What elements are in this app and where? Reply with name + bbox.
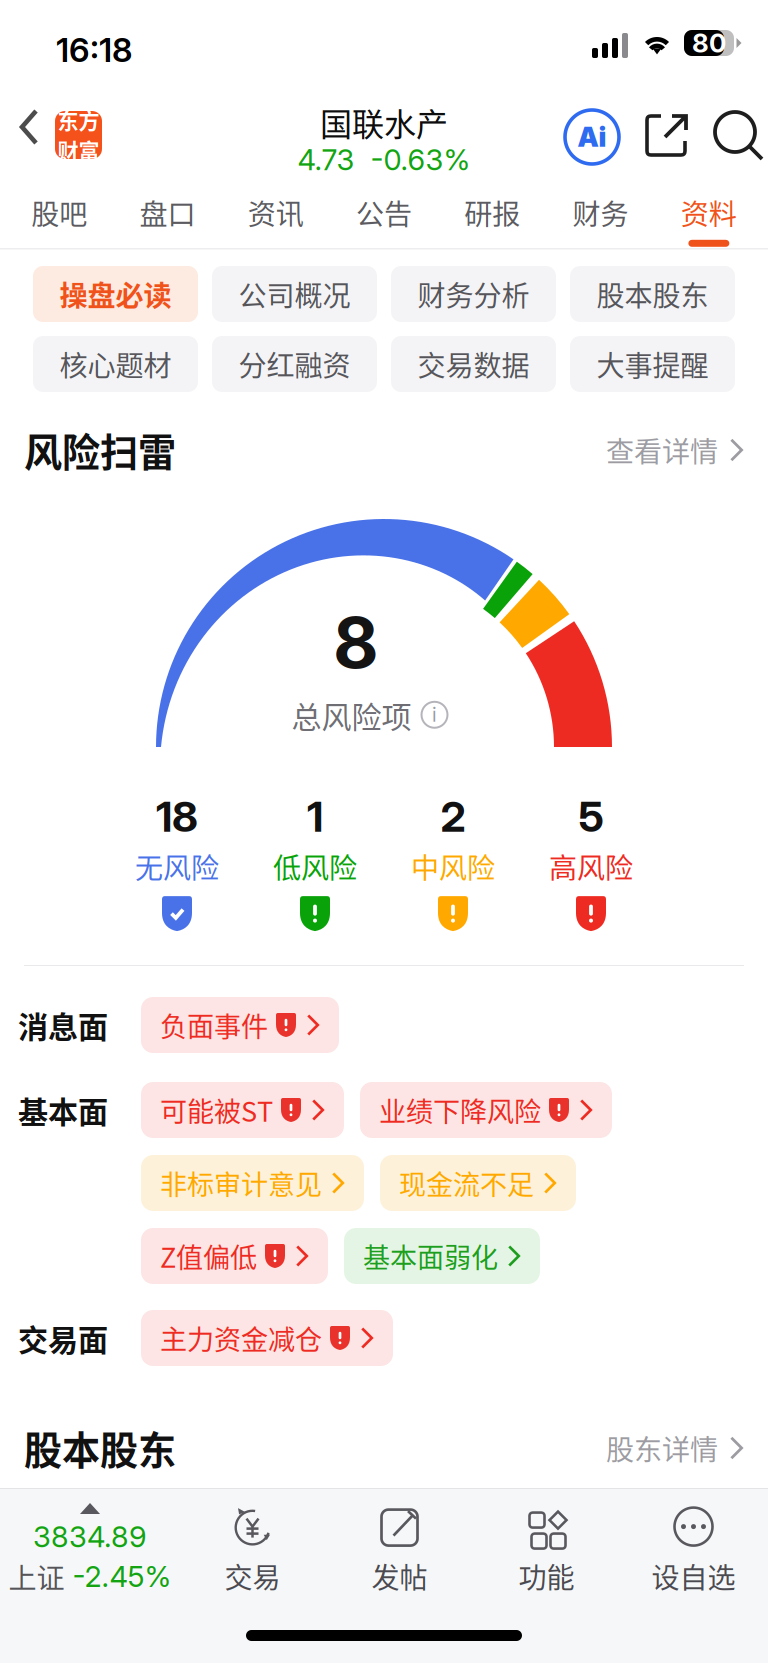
staticText: 主力资金减仓: [160, 1318, 322, 1358]
button[interactable]: 发帖: [326, 1504, 473, 1596]
staticText: 交易数据: [417, 344, 529, 384]
button[interactable]: 3834.89: [1, 1503, 179, 1597]
staticText: 3834.89: [33, 1519, 147, 1554]
staticText: 国联水产: [320, 99, 448, 145]
staticText: 现金流不足: [399, 1163, 534, 1203]
staticText: 4.73 -0.63%: [297, 142, 470, 177]
button[interactable]: 业绩下降风险: [360, 1082, 612, 1138]
staticText: 高风险: [549, 846, 633, 887]
staticText: 负面事件: [160, 1005, 268, 1045]
staticText: 东方: [57, 104, 99, 135]
staticText: 资讯: [248, 192, 304, 233]
button[interactable]: 研报: [438, 180, 546, 247]
staticText: 消息面: [18, 1003, 108, 1047]
button[interactable]: 公告: [330, 180, 438, 247]
button[interactable]: 现金流不足: [380, 1155, 576, 1211]
button[interactable]: 公司概况: [212, 266, 377, 322]
staticText: Z值偏低: [160, 1236, 257, 1276]
staticText: 发帖: [371, 1556, 427, 1596]
staticText: 5: [578, 791, 603, 842]
button[interactable]: 功能: [473, 1504, 620, 1596]
staticText: 公司概况: [238, 274, 350, 314]
staticText: 非标审计意见: [160, 1163, 322, 1203]
button[interactable]: 交易: [179, 1504, 326, 1596]
staticText: 股吧: [31, 192, 87, 233]
staticText: 交易: [224, 1556, 280, 1596]
staticText: 设自选: [651, 1556, 735, 1596]
staticText: Ai: [577, 121, 606, 153]
staticText: 查看详情: [606, 430, 718, 470]
button[interactable]: 负面事件: [141, 997, 339, 1053]
staticText: 资料: [681, 192, 737, 233]
staticText: 业绩下降风险: [379, 1090, 541, 1130]
staticText: 可能被ST: [160, 1090, 273, 1130]
button[interactable]: Back: [14, 105, 44, 151]
staticText: 基本面弱化: [363, 1236, 498, 1276]
staticText: 股东详情: [606, 1428, 718, 1468]
staticText: 2: [440, 791, 465, 842]
staticText: 80: [692, 27, 726, 59]
staticText: 交易面: [18, 1316, 108, 1360]
button[interactable]: 资讯: [222, 180, 330, 247]
button[interactable]: 可能被ST: [141, 1082, 344, 1138]
button[interactable]: Search: [714, 110, 766, 162]
button[interactable]: AI: [564, 109, 620, 165]
staticText: 无风险: [135, 846, 219, 887]
staticText: 财富: [57, 135, 99, 165]
button[interactable]: 盘口: [113, 180, 222, 247]
staticText: 总风险项: [291, 693, 411, 737]
button[interactable]: East Money: [55, 111, 102, 159]
staticText: 核心题材: [59, 344, 171, 384]
button[interactable]: 资料: [655, 180, 763, 247]
button[interactable]: 股吧: [5, 180, 113, 247]
button[interactable]: 大事提醒: [570, 336, 735, 392]
button[interactable]: 主力资金减仓: [141, 1310, 393, 1366]
staticText: 财务: [573, 192, 629, 233]
staticText: 分红融资: [238, 344, 350, 384]
staticText: 基本面: [18, 1088, 108, 1132]
staticText: 8: [333, 600, 379, 685]
button[interactable]: 核心题材: [33, 336, 198, 392]
staticText: 操盘必读: [59, 274, 171, 314]
staticText: -2.45%: [72, 1559, 171, 1594]
button[interactable]: 股东详情: [606, 1428, 744, 1468]
button[interactable]: Z值偏低: [141, 1228, 328, 1284]
button[interactable]: 非标审计意见: [141, 1155, 364, 1211]
button[interactable]: 财务分析: [391, 266, 556, 322]
button[interactable]: Share: [641, 110, 691, 160]
staticText: 功能: [518, 1556, 574, 1596]
staticText: 低风险: [273, 846, 357, 887]
staticText: i: [432, 703, 437, 726]
staticText: 中风险: [411, 846, 495, 887]
staticText: 公告: [356, 192, 412, 233]
staticText: 1: [307, 791, 323, 842]
button[interactable]: 基本面弱化: [344, 1228, 540, 1284]
staticText: 上证: [8, 1556, 64, 1597]
button[interactable]: 股本股东: [570, 266, 735, 322]
staticText: 股本股东: [24, 1420, 176, 1476]
staticText: 盘口: [139, 192, 195, 233]
button[interactable]: 财务: [546, 180, 655, 247]
button[interactable]: 操盘必读: [33, 266, 198, 322]
staticText: 大事提醒: [596, 344, 708, 384]
staticText: 18: [156, 791, 198, 842]
staticText: 股本股东: [596, 274, 708, 314]
staticText: 16:18: [56, 30, 132, 70]
button[interactable]: 查看详情: [606, 430, 744, 470]
button[interactable]: 分红融资: [212, 336, 377, 392]
staticText: 财务分析: [417, 274, 529, 314]
staticText: 研报: [464, 192, 520, 233]
button[interactable]: 交易数据: [391, 336, 556, 392]
staticText: 风险扫雷: [24, 422, 176, 478]
button[interactable]: 设自选: [620, 1504, 767, 1596]
